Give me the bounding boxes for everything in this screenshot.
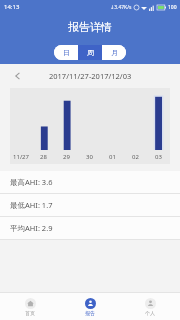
staticText: 2017/11/27-2017/12/03 (49, 71, 132, 81)
staticText: 日 (63, 48, 70, 57)
staticText: 最低AHI: 1.7 (10, 200, 53, 210)
staticText: 01 (109, 153, 116, 161)
button[interactable]: 最低AHI: 1.7 (0, 194, 180, 216)
button[interactable]: 周 (78, 45, 102, 60)
button[interactable]: 个人 (120, 293, 180, 320)
staticText: 最高AHI: 3.6 (10, 177, 53, 187)
staticText: 29 (63, 153, 70, 161)
staticText: 100 (168, 4, 177, 11)
staticText: 28 (40, 153, 47, 161)
staticText: 02 (132, 153, 139, 161)
staticText: 个人 (145, 310, 155, 316)
button[interactable]: Previous period (10, 68, 26, 84)
button[interactable]: 首页 (0, 293, 60, 320)
staticText: 11/27 (13, 153, 29, 161)
staticText: 报告详情 (68, 20, 112, 34)
staticText: 14:13 (4, 3, 20, 11)
staticText: 报告 (85, 310, 95, 316)
staticText: 月 (111, 48, 118, 57)
button[interactable]: 报告 (60, 293, 120, 320)
button[interactable]: 月 (102, 45, 126, 60)
staticText: ↓3.47K/s (110, 4, 132, 11)
staticText: 平均AHI: 2.9 (10, 223, 53, 233)
button[interactable]: 最高AHI: 3.6 (0, 171, 180, 193)
button[interactable]: 日 (54, 45, 78, 60)
staticText: 30 (86, 153, 93, 161)
button[interactable]: 平均AHI: 2.9 (0, 217, 180, 239)
staticText: 03 (155, 153, 162, 161)
staticText: 周 (87, 48, 94, 57)
staticText: 首页 (25, 310, 35, 316)
